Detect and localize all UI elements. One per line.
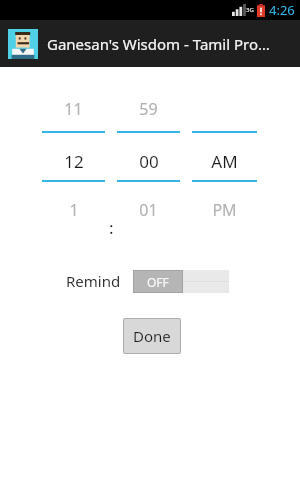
button[interactable]: Done (123, 318, 181, 354)
staticText: 00 (139, 150, 159, 173)
staticText: PM (212, 199, 237, 221)
button[interactable]: Select value 00 (117, 93, 180, 233)
button[interactable]: Remind toggle, off (133, 270, 229, 293)
staticText: 01 (139, 199, 158, 221)
staticText: 59 (139, 98, 158, 120)
staticText: OFF (147, 274, 169, 290)
button[interactable]: Select value AM (192, 93, 257, 233)
staticText: 4:26 (269, 1, 295, 19)
button[interactable]: Select value 12 (42, 93, 105, 233)
staticText: 11 (64, 98, 83, 120)
staticText: 3G (246, 6, 254, 14)
staticText: Done (133, 326, 171, 346)
staticText: 1 (69, 199, 79, 221)
button[interactable]: App icon, navigate up (8, 29, 38, 59)
staticText: Remind (66, 271, 121, 291)
staticText: AM (211, 150, 238, 173)
staticText: 12 (64, 150, 84, 173)
staticText: : (109, 216, 114, 239)
staticText: Ganesan's Wisdom - Tamil Pro… (47, 34, 270, 54)
